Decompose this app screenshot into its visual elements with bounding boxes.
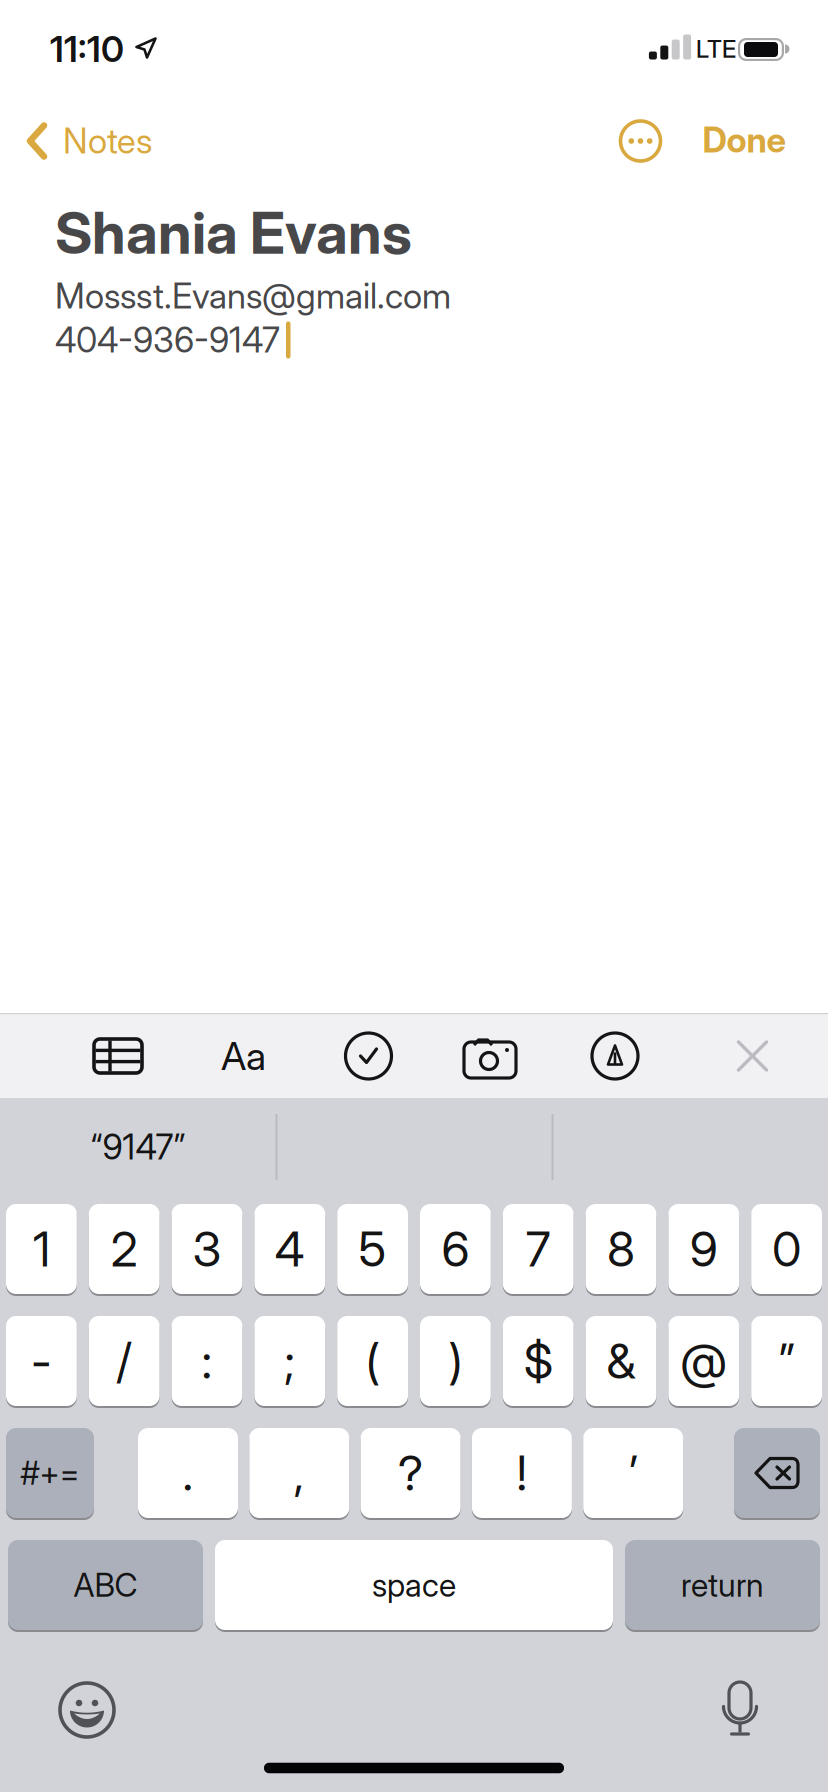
button[interactable]: Markup <box>585 1026 645 1086</box>
staticText: Notes <box>63 121 152 161</box>
button[interactable]: 0 <box>751 1203 822 1295</box>
staticText: 5 <box>359 1221 387 1277</box>
button[interactable]: ( <box>337 1315 408 1407</box>
staticText: Done <box>702 120 785 160</box>
button[interactable]: ? <box>361 1427 461 1519</box>
staticText: ’ <box>629 1445 638 1501</box>
button[interactable]: 8 <box>586 1203 656 1295</box>
staticText: 11:10 <box>50 28 124 70</box>
button[interactable]: 4 <box>254 1203 325 1295</box>
button[interactable]: #+= <box>6 1427 94 1519</box>
staticText: 0 <box>772 1221 801 1277</box>
button[interactable]: 3 <box>172 1203 242 1295</box>
staticText: & <box>606 1333 635 1389</box>
staticText: ABC <box>73 1566 137 1604</box>
staticText: , <box>294 1445 305 1501</box>
button[interactable]: Dismiss keyboard <box>734 1038 770 1074</box>
button[interactable]: space <box>215 1539 613 1631</box>
button[interactable]: ’ <box>583 1427 683 1519</box>
staticText: 9 <box>690 1221 718 1277</box>
button[interactable]: , <box>249 1427 349 1519</box>
staticText: “9147” <box>90 1127 185 1167</box>
staticText: 4 <box>275 1221 305 1277</box>
staticText: $ <box>524 1333 553 1389</box>
button[interactable]: / <box>89 1315 160 1407</box>
button[interactable]: Checklist <box>338 1026 398 1086</box>
staticText: 2 <box>111 1221 138 1277</box>
button[interactable]: . <box>138 1427 238 1519</box>
staticText: : <box>201 1333 212 1389</box>
button[interactable]: ” <box>751 1315 822 1407</box>
staticText: ” <box>779 1333 795 1389</box>
button[interactable]: return <box>625 1539 820 1631</box>
button[interactable]: Dictate <box>715 1679 765 1743</box>
button[interactable]: 5 <box>337 1203 408 1295</box>
button[interactable]: 9 <box>668 1203 739 1295</box>
button[interactable]: Insert photo <box>458 1026 522 1086</box>
staticText: return <box>681 1566 764 1604</box>
staticText: ( <box>366 1333 380 1389</box>
button[interactable]: Notes <box>27 121 152 161</box>
button[interactable]: ) <box>420 1315 491 1407</box>
button[interactable]: & <box>586 1315 656 1407</box>
staticText: Shania Evans <box>55 199 412 267</box>
button[interactable]: More <box>618 119 662 163</box>
staticText: Mossst.Evans@gmail.com <box>55 276 451 316</box>
button[interactable]: 1 <box>6 1203 77 1295</box>
staticText: 8 <box>607 1221 635 1277</box>
staticText: ! <box>516 1445 527 1501</box>
staticText: - <box>31 1333 52 1389</box>
button[interactable]: “9147” <box>3 1102 273 1192</box>
staticText: Aa <box>221 1033 266 1079</box>
staticText: #+= <box>20 1454 79 1492</box>
button[interactable]: Done <box>702 120 785 160</box>
staticText: 3 <box>192 1221 221 1277</box>
staticText: 7 <box>526 1221 551 1277</box>
staticText: @ <box>680 1333 727 1389</box>
button[interactable]: 6 <box>420 1203 491 1295</box>
staticText: . <box>182 1445 193 1501</box>
staticText: / <box>116 1333 132 1389</box>
button[interactable]: @ <box>668 1315 739 1407</box>
button[interactable]: ABC <box>8 1539 203 1631</box>
button[interactable]: Emoji <box>55 1678 119 1742</box>
staticText: 1 <box>33 1221 50 1277</box>
button[interactable]: ! <box>472 1427 572 1519</box>
button[interactable]: Insert table <box>88 1026 148 1086</box>
button[interactable]: Delete <box>734 1427 820 1519</box>
button[interactable]: - <box>6 1315 77 1407</box>
staticText: ) <box>448 1333 462 1389</box>
staticText: 6 <box>441 1221 469 1277</box>
button[interactable]: 2 <box>89 1203 160 1295</box>
staticText: LTE <box>696 35 736 63</box>
button[interactable]: : <box>172 1315 242 1407</box>
button[interactable]: $ <box>503 1315 574 1407</box>
staticText: space <box>372 1566 456 1604</box>
button[interactable]: ; <box>254 1315 325 1407</box>
button[interactable]: Format <box>208 1026 278 1086</box>
staticText: ; <box>284 1333 295 1389</box>
staticText: ? <box>398 1445 423 1501</box>
staticText: 404-936-9147 <box>55 320 280 360</box>
button[interactable]: 7 <box>503 1203 574 1295</box>
